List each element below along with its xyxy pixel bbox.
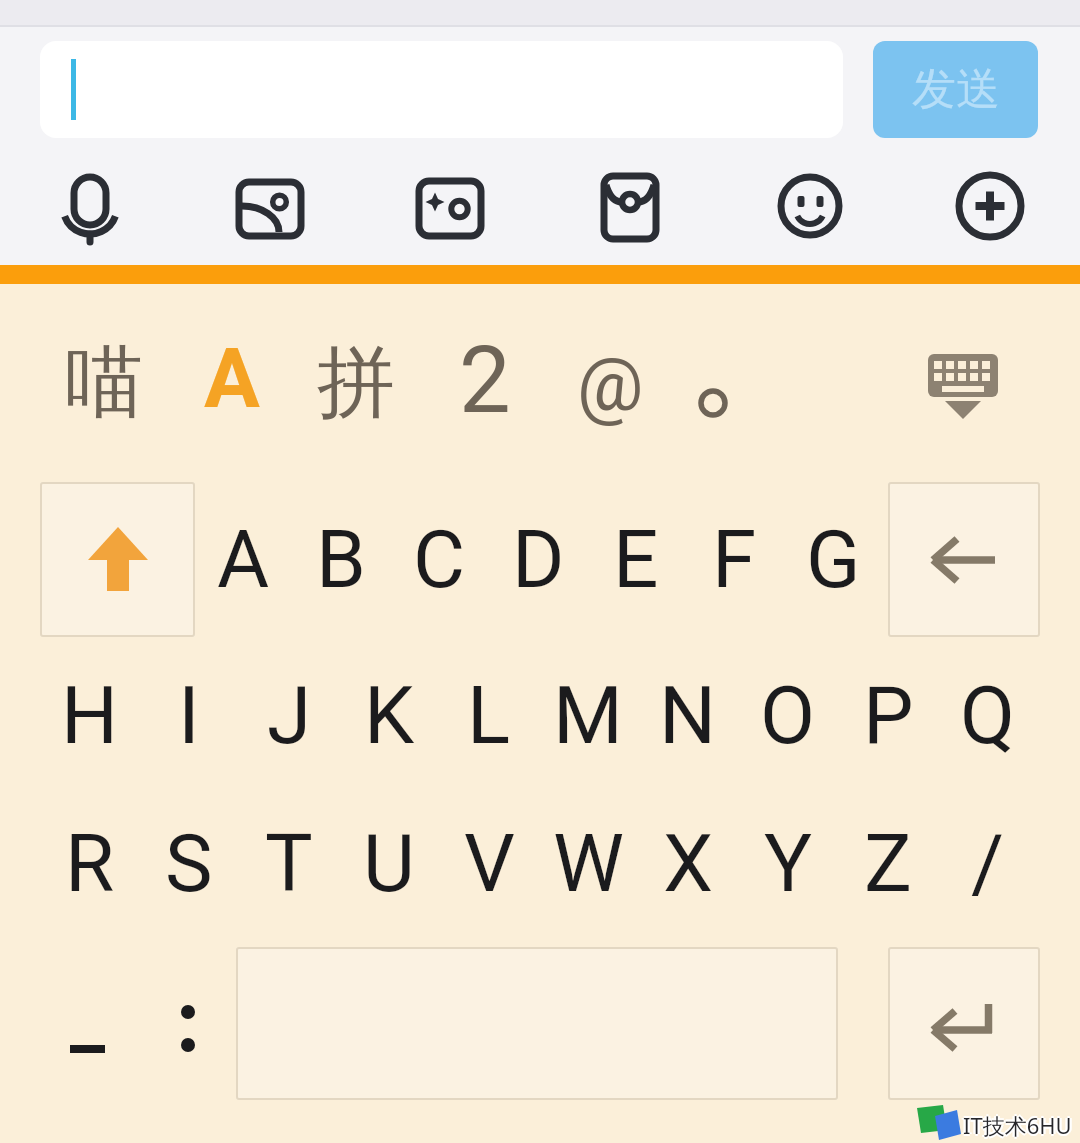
staticText: W <box>553 817 624 911</box>
staticText: U <box>363 817 415 911</box>
staticText: O <box>760 669 816 763</box>
staticText: Y <box>764 817 813 911</box>
staticText: P <box>863 669 914 763</box>
staticText: F <box>712 513 757 607</box>
staticText: IT技术6HU <box>963 1112 1072 1142</box>
staticText: Q <box>960 669 1016 763</box>
staticText: E <box>613 513 659 607</box>
staticText: C <box>413 513 466 607</box>
staticText: K <box>364 669 415 763</box>
staticText: Z <box>864 817 912 911</box>
staticText: H <box>61 669 119 763</box>
staticText: G <box>806 513 861 607</box>
staticText: T <box>265 817 313 911</box>
staticText: @ <box>577 341 644 428</box>
staticText: / <box>971 817 1005 911</box>
staticText: 喵 <box>65 334 143 432</box>
button[interactable] <box>40 482 195 637</box>
staticText: V <box>464 817 515 911</box>
staticText: 2 <box>459 327 511 435</box>
button[interactable] <box>888 947 1040 1100</box>
staticText: A <box>204 330 260 427</box>
staticText: A <box>217 513 270 607</box>
staticText: IT技术6HU <box>961 1110 1070 1140</box>
staticText: S <box>165 817 213 911</box>
staticText: IT技术6HU <box>963 1110 1072 1140</box>
button[interactable] <box>40 41 843 138</box>
staticText: 发送 <box>912 62 1000 117</box>
button[interactable] <box>923 349 1003 424</box>
button[interactable] <box>888 482 1040 637</box>
staticText: X <box>663 817 714 911</box>
button[interactable]: 发送 <box>873 41 1038 138</box>
staticText: D <box>512 513 565 607</box>
staticText: L <box>467 669 511 763</box>
staticText: IT技术6HU <box>965 1110 1074 1140</box>
staticText: R <box>65 817 115 911</box>
staticText: IT技术6HU <box>963 1108 1072 1138</box>
staticText: J <box>267 669 312 763</box>
button[interactable] <box>236 947 838 1100</box>
staticText: I <box>178 669 200 763</box>
staticText: N <box>659 669 717 763</box>
staticText: 拼 <box>317 334 395 432</box>
staticText: B <box>316 513 366 607</box>
staticText: M <box>553 669 623 763</box>
